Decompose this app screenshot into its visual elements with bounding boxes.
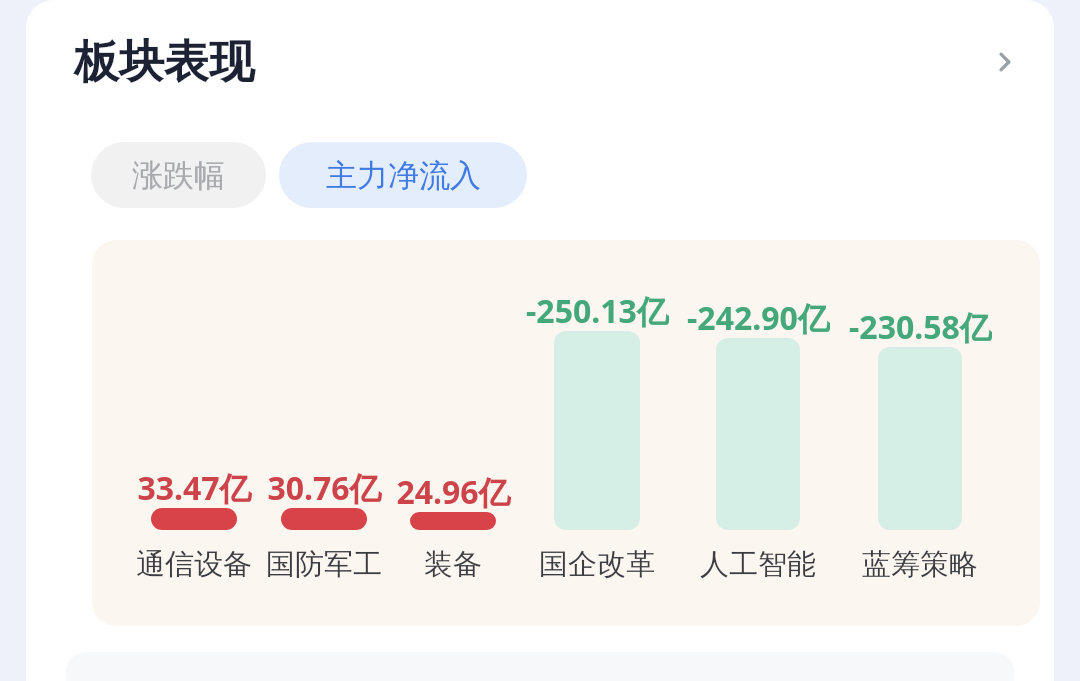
staticText: 通信设备 <box>136 546 252 583</box>
staticText: -242.90亿 <box>687 296 830 336</box>
staticText: 涨跌幅 <box>132 156 225 195</box>
button[interactable]: 查看更多板块表现 <box>976 34 1032 90</box>
staticText: 国防军工 <box>266 546 382 583</box>
staticText: 33.47亿 <box>137 466 252 506</box>
staticText: 主力净流入 <box>326 156 481 195</box>
staticText: 24.96亿 <box>396 470 511 510</box>
staticText: 国企改革 <box>539 546 655 583</box>
button[interactable]: 33.47亿 <box>92 240 1040 626</box>
staticText: 30.76亿 <box>267 466 382 506</box>
staticText: 板块表现 <box>74 34 254 91</box>
staticText: 蓝筹策略 <box>862 546 978 583</box>
button[interactable]: 主力净流入 <box>279 142 527 208</box>
button[interactable]: 涨跌幅 <box>91 142 266 208</box>
button[interactable]: 板块表现 <box>72 30 256 95</box>
staticText: -250.13亿 <box>526 289 669 329</box>
staticText: -230.58亿 <box>849 305 992 345</box>
staticText: 人工智能 <box>700 546 816 583</box>
staticText: 装备 <box>424 546 482 583</box>
